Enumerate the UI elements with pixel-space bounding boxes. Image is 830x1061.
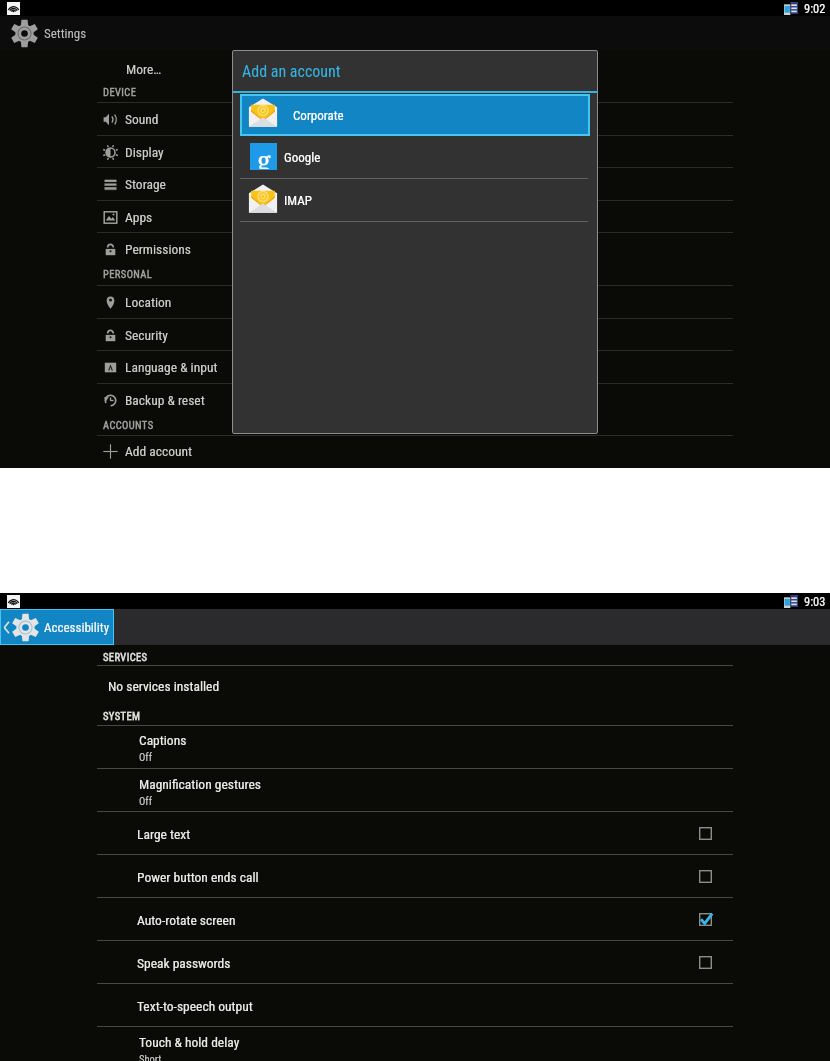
button[interactable]: Language & input	[0, 351, 830, 384]
staticText: Power button ends call	[137, 869, 259, 885]
staticText: Google	[284, 150, 321, 165]
button[interactable]: Settings	[0, 16, 87, 50]
staticText: Corporate	[293, 108, 344, 123]
staticText: Add account	[125, 443, 193, 459]
staticText: Settings	[44, 26, 87, 41]
staticText: Backup & reset	[125, 392, 205, 408]
staticText: Large text	[137, 826, 191, 842]
staticText: Permissions	[125, 241, 191, 257]
button[interactable]: Magnification gestures	[0, 769, 830, 812]
staticText: ACCOUNTS	[103, 419, 154, 431]
staticText: Speak passwords	[137, 955, 231, 971]
staticText: PERSONAL	[103, 268, 153, 280]
staticText: Off	[139, 751, 152, 763]
button[interactable]: Touch & hold delay	[0, 1027, 830, 1061]
staticText: SYSTEM	[103, 710, 141, 722]
button[interactable]: Captions	[0, 725, 830, 769]
staticText: Language & input	[125, 359, 218, 375]
staticText: Apps	[125, 209, 153, 225]
button[interactable]: Large text	[0, 812, 830, 855]
button[interactable]: Auto-rotate screen	[0, 898, 830, 941]
button[interactable]: Text-to-speech output	[0, 984, 830, 1027]
button[interactable]: g	[232, 136, 598, 179]
staticText: Touch & hold delay	[139, 1034, 240, 1050]
staticText: Add an account	[242, 62, 341, 81]
button[interactable]: Speak passwords	[0, 941, 830, 984]
staticText: IMAP	[284, 193, 312, 208]
staticText: Location	[125, 294, 172, 310]
button[interactable]: Back to Accessibility	[0, 609, 114, 645]
staticText: Security	[125, 327, 168, 343]
staticText: Auto-rotate screen	[137, 912, 236, 928]
staticText: Captions	[139, 732, 187, 748]
staticText: Magnification gestures	[139, 776, 261, 792]
button[interactable]: Security	[0, 319, 830, 351]
button[interactable]: Apps	[0, 201, 830, 233]
staticText: DEVICE	[103, 86, 137, 98]
staticText: Text-to-speech output	[137, 998, 253, 1014]
staticText: Off	[139, 795, 152, 807]
button[interactable]: IMAP	[232, 179, 598, 222]
button[interactable]: Add account	[0, 435, 830, 468]
staticText: g	[257, 142, 271, 169]
button[interactable]: Power button ends call	[0, 855, 830, 898]
staticText: Short	[139, 1053, 162, 1061]
button[interactable]: Corporate	[240, 94, 590, 136]
staticText: 9:03	[804, 594, 826, 609]
button[interactable]: Permissions	[0, 233, 830, 266]
staticText: SERVICES	[103, 651, 148, 663]
staticText: No services installed	[108, 678, 220, 694]
button[interactable]: Backup & reset	[0, 384, 830, 416]
button[interactable]: No services installed	[0, 665, 830, 695]
staticText: More…	[126, 61, 162, 77]
staticText: 9:02	[804, 1, 826, 16]
button[interactable]: Location	[0, 286, 830, 319]
button[interactable]: Storage	[0, 168, 830, 201]
button[interactable]: More…	[0, 55, 830, 83]
staticText: Display	[125, 144, 164, 160]
staticText: Accessibility	[44, 620, 110, 635]
button[interactable]: Display	[0, 136, 830, 168]
button[interactable]: Sound	[0, 103, 830, 136]
staticText: Sound	[125, 111, 159, 127]
staticText: Storage	[125, 176, 166, 192]
